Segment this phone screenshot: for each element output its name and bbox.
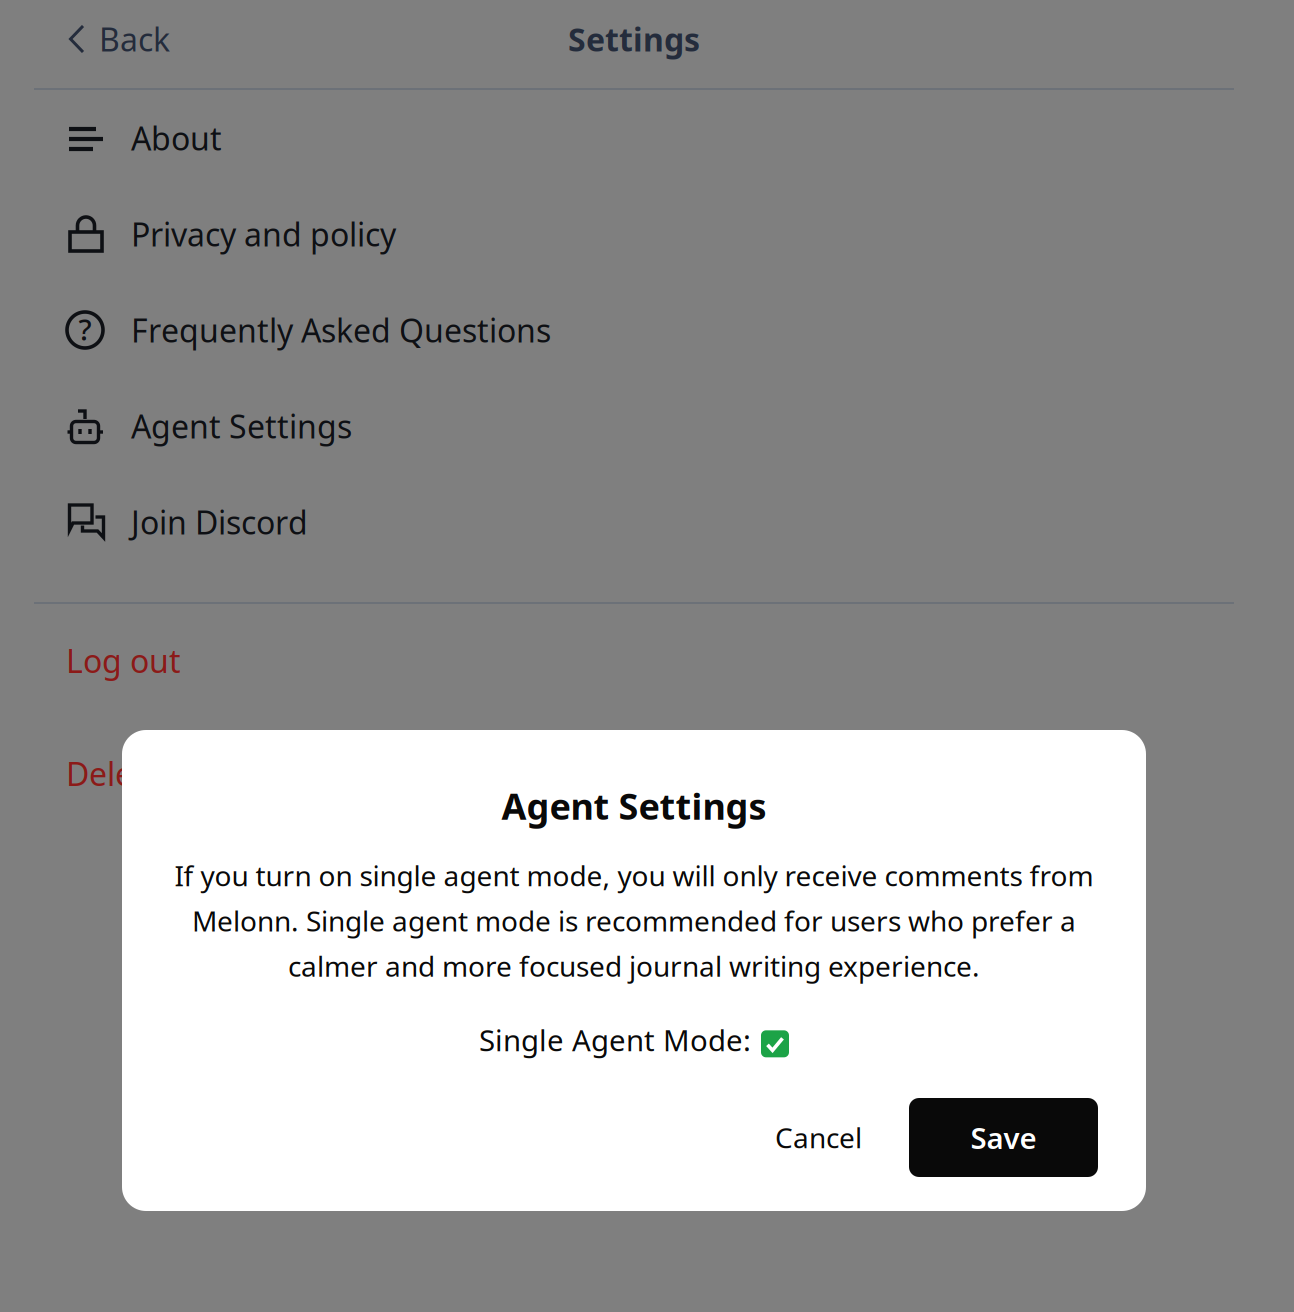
staticText: Melonn. Single agent mode is recommended…	[192, 902, 1076, 939]
staticText: If you turn on single agent mode, you wi…	[174, 857, 1093, 894]
staticText: ?	[78, 309, 91, 348]
staticText: Join Discord	[131, 501, 308, 543]
button[interactable]: Privacy and policy	[0, 186, 1294, 282]
staticText: Agent Settings	[501, 782, 766, 830]
staticText: Single Agent Mode:	[479, 1020, 751, 1059]
staticText: Back	[99, 18, 170, 60]
button[interactable]: Single Agent Mode toggle	[761, 1026, 789, 1053]
button[interactable]: Save	[909, 1098, 1098, 1177]
button[interactable]: Delete account	[0, 717, 1294, 830]
button[interactable]: Join Discord	[0, 474, 1294, 570]
button[interactable]: Back	[0, 0, 1294, 88]
staticText: Save	[970, 1118, 1036, 1157]
button[interactable]: ?	[0, 282, 1294, 378]
staticText: Privacy and policy	[131, 213, 396, 255]
staticText: Agent Settings	[131, 405, 352, 447]
button[interactable]: Log out	[0, 604, 1294, 717]
staticText: About	[131, 117, 222, 159]
staticText: calmer and more focused journal writing …	[288, 947, 980, 984]
staticText: Delete account	[66, 752, 290, 795]
staticText: Cancel	[775, 1119, 862, 1156]
staticText: Frequently Asked Questions	[131, 309, 551, 351]
button[interactable]: Cancel	[751, 1098, 886, 1177]
staticText: Log out	[66, 639, 181, 682]
staticText: Settings	[568, 18, 700, 60]
button[interactable]: About	[0, 90, 1294, 186]
button[interactable]: Agent Settings	[0, 378, 1294, 474]
